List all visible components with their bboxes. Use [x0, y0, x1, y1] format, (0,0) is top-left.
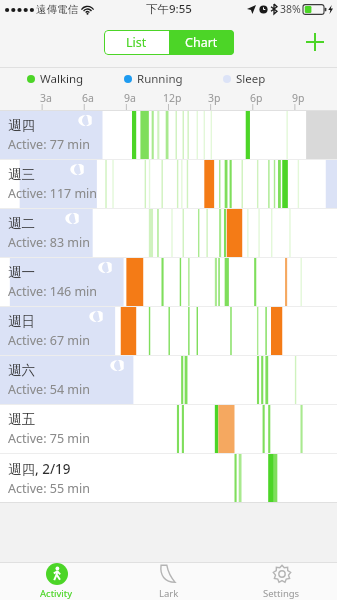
staticText: 週五	[8, 411, 35, 428]
staticText: Walking	[40, 71, 84, 87]
button[interactable]: 週四, 2/19	[0, 454, 337, 502]
staticText: Activity	[40, 587, 73, 600]
staticText: 6p	[250, 91, 263, 105]
button[interactable]: 週五	[0, 405, 337, 453]
staticText: 下午9:55	[146, 1, 192, 17]
staticText: Active: 77 min	[8, 136, 90, 153]
staticText: List	[126, 34, 147, 51]
button[interactable]: 週一	[0, 258, 337, 306]
button[interactable]: 週日	[0, 307, 337, 355]
staticText: 週二	[8, 215, 35, 232]
staticText: Active: 55 min	[8, 480, 90, 497]
staticText: 週日	[8, 313, 35, 330]
button[interactable]: 週三	[0, 160, 337, 208]
button[interactable]: 週四	[0, 111, 337, 159]
staticText: 3p	[208, 91, 221, 105]
staticText: Chart	[185, 34, 218, 51]
staticText: 週六	[8, 362, 35, 379]
staticText: Active: 146 min	[8, 283, 98, 300]
staticText: 12p	[163, 91, 182, 105]
staticText: 3a	[40, 91, 52, 105]
staticText: 6a	[82, 91, 94, 105]
button[interactable]: Lark	[113, 562, 225, 600]
staticText: Active: 54 min	[8, 381, 90, 398]
staticText: Settings	[263, 587, 300, 600]
staticText: 週四, 2/19	[8, 460, 71, 478]
button[interactable]: Chart	[169, 30, 234, 55]
staticText: 9p	[292, 91, 305, 105]
staticText: 9a	[124, 91, 136, 105]
button[interactable]: Activity	[0, 562, 113, 600]
button[interactable]: 週二	[0, 209, 337, 257]
staticText: Active: 83 min	[8, 234, 90, 251]
staticText: Sleep	[236, 71, 266, 87]
staticText: Active: 117 min	[8, 185, 98, 202]
staticText: Lark	[159, 587, 179, 600]
staticText: 遠傳電信	[36, 3, 78, 16]
button[interactable]: 週六	[0, 356, 337, 404]
staticText: Active: 75 min	[8, 430, 90, 447]
button[interactable]: List	[104, 30, 169, 55]
staticText: 週四	[8, 117, 35, 134]
button[interactable]: Add	[293, 20, 337, 64]
staticText: 38%	[280, 2, 301, 16]
staticText: Active: 67 min	[8, 332, 90, 349]
staticText: 週一	[8, 264, 35, 281]
button[interactable]: Settings	[225, 562, 337, 600]
staticText: Running	[137, 71, 183, 87]
staticText: 週三	[8, 166, 35, 183]
